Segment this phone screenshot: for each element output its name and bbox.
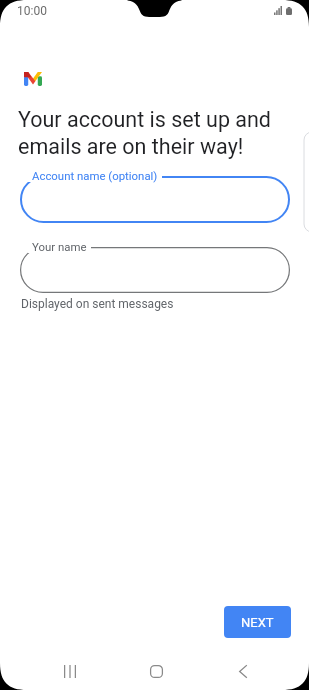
staticText: Your account is set up and emails are on… <box>18 107 286 160</box>
button[interactable]: Back <box>213 656 273 686</box>
button[interactable]: Account name (optional) <box>20 176 290 223</box>
staticText: Displayed on sent messages <box>21 297 174 311</box>
button[interactable]: Home <box>126 656 186 686</box>
staticText: 10:00 <box>17 4 47 18</box>
button[interactable]: NEXT <box>224 606 291 638</box>
button[interactable]: Your name <box>20 247 290 293</box>
staticText: NEXT <box>241 615 274 630</box>
button[interactable]: Recent apps <box>40 656 100 686</box>
staticText: Your name <box>32 240 87 253</box>
staticText: Account name (optional) <box>32 169 158 182</box>
